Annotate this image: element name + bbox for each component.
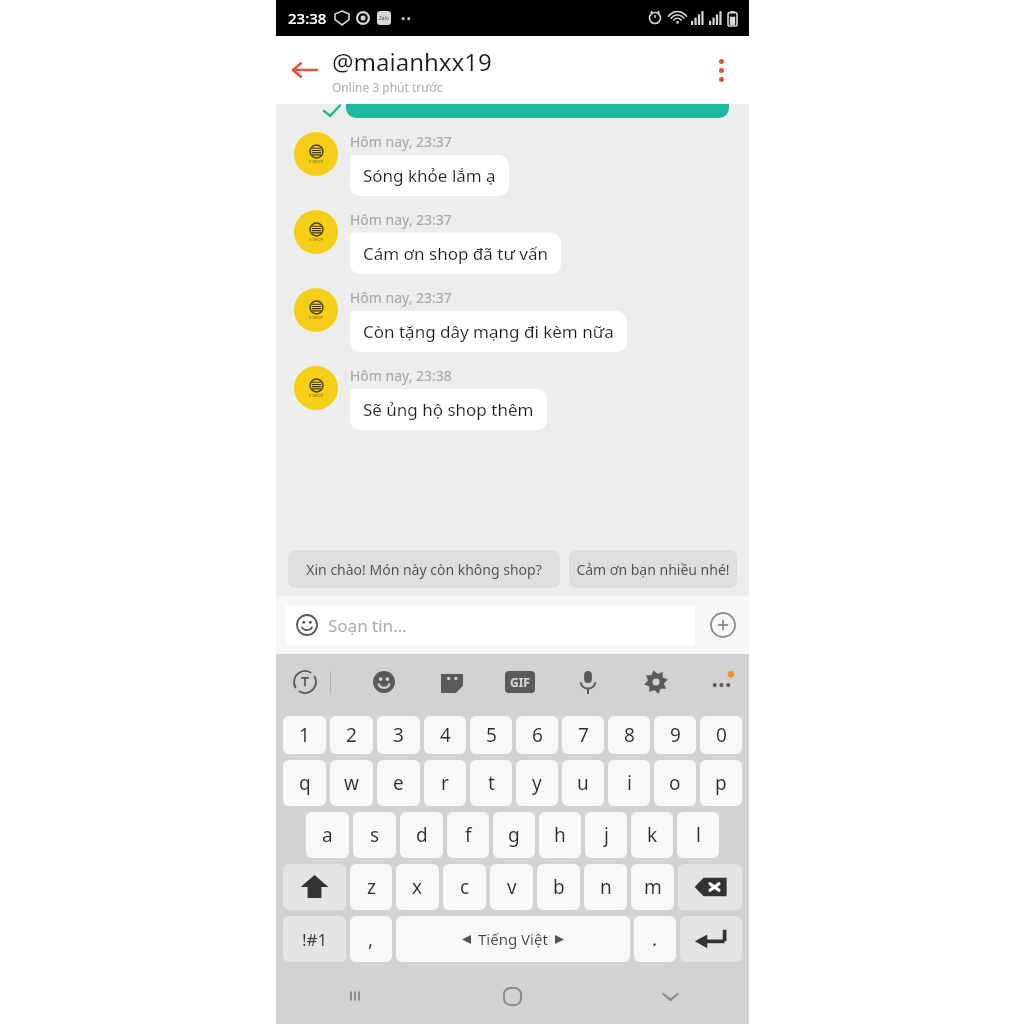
- button[interactable]: Add attachment: [707, 609, 739, 641]
- button[interactable]: Cảm ơn bạn nhiều nhé!: [569, 550, 737, 588]
- button[interactable]: x: [396, 864, 439, 910]
- staticText: 4: [440, 722, 451, 748]
- button[interactable]: Home: [433, 968, 591, 1024]
- button[interactable]: n: [584, 864, 627, 910]
- staticText: X SHOP: [309, 159, 324, 164]
- button[interactable]: v: [490, 864, 533, 910]
- staticText: Hôm nay, 23:37: [350, 132, 452, 151]
- button[interactable]: a: [306, 812, 349, 858]
- button[interactable]: l: [677, 812, 719, 858]
- button[interactable]: s: [353, 812, 396, 858]
- button[interactable]: Settings: [641, 667, 671, 697]
- staticText: z: [367, 874, 376, 900]
- button[interactable]: j: [585, 812, 627, 858]
- staticText: p: [715, 770, 727, 796]
- staticText: 5: [486, 722, 497, 748]
- button[interactable]: t: [470, 760, 512, 806]
- button[interactable]: w: [330, 760, 373, 806]
- button[interactable]: Voice input: [573, 667, 603, 697]
- button[interactable]: Recents: [276, 968, 433, 1024]
- staticText: r: [441, 770, 449, 796]
- staticText: 6: [532, 722, 543, 748]
- button[interactable]: Avatar: [294, 288, 338, 332]
- button[interactable]: Enter: [680, 916, 742, 962]
- staticText: Sóng khỏe lắm ạ: [363, 164, 496, 187]
- button[interactable]: Xin chào! Món này còn không shop?: [288, 550, 560, 588]
- button[interactable]: y: [516, 760, 558, 806]
- button[interactable]: GIF: [505, 671, 535, 693]
- staticText: c: [460, 874, 470, 900]
- staticText: 7: [578, 722, 589, 748]
- button[interactable]: o: [654, 760, 696, 806]
- button[interactable]: 2: [330, 716, 373, 754]
- button[interactable]: e: [377, 760, 420, 806]
- staticText: o: [669, 770, 681, 796]
- staticText: Hôm nay, 23:38: [350, 366, 452, 385]
- staticText: Hôm nay, 23:37: [350, 288, 452, 307]
- staticText: l: [696, 822, 701, 848]
- button[interactable]: Back: [276, 42, 332, 98]
- button[interactable]: Còn tặng dây mạng đi kèm nữa: [350, 311, 627, 352]
- button[interactable]: Sẽ ủng hộ shop thêm: [350, 389, 547, 430]
- button[interactable]: g: [493, 812, 535, 858]
- staticText: j: [604, 822, 609, 848]
- staticText: Soạn tin...: [328, 614, 407, 637]
- staticText: Online 3 phút trước: [332, 79, 443, 95]
- button[interactable]: Avatar: [294, 132, 338, 176]
- button[interactable]: 4: [424, 716, 466, 754]
- button[interactable]: Tiếng Việt: [396, 916, 630, 962]
- button[interactable]: q: [283, 760, 326, 806]
- button[interactable]: Shift: [283, 864, 346, 910]
- staticText: e: [393, 770, 404, 796]
- button[interactable]: z: [350, 864, 392, 910]
- staticText: 9: [670, 722, 681, 748]
- button[interactable]: 5: [470, 716, 512, 754]
- button[interactable]: i: [608, 760, 650, 806]
- button[interactable]: c: [443, 864, 486, 910]
- button[interactable]: Backspace: [678, 864, 742, 910]
- staticText: x: [412, 874, 423, 900]
- button[interactable]: ,: [350, 916, 392, 962]
- button[interactable]: More: [709, 669, 735, 695]
- button[interactable]: b: [537, 864, 580, 910]
- button[interactable]: m: [631, 864, 674, 910]
- button[interactable]: f: [447, 812, 489, 858]
- button[interactable]: Stickers: [437, 667, 467, 697]
- button[interactable]: h: [539, 812, 581, 858]
- button[interactable]: Cám ơn shop đã tư vấn: [350, 233, 561, 274]
- staticText: 2: [346, 722, 357, 748]
- button[interactable]: 9: [654, 716, 696, 754]
- button[interactable]: [346, 104, 729, 118]
- button[interactable]: Avatar: [294, 210, 338, 254]
- button[interactable]: Emoji: [369, 667, 399, 697]
- button[interactable]: 6: [516, 716, 558, 754]
- button[interactable]: Soạn tin...: [286, 605, 695, 645]
- staticText: n: [600, 874, 612, 900]
- button[interactable]: k: [631, 812, 673, 858]
- staticText: GIF: [510, 674, 530, 690]
- button[interactable]: Avatar: [294, 366, 338, 410]
- button[interactable]: u: [562, 760, 604, 806]
- button[interactable]: Sóng khỏe lắm ạ: [350, 155, 509, 196]
- button[interactable]: Hide keyboard: [591, 968, 749, 1024]
- button[interactable]: 0: [700, 716, 742, 754]
- button[interactable]: !#1: [283, 916, 346, 962]
- staticText: .: [652, 926, 658, 952]
- staticText: 8: [624, 722, 635, 748]
- button[interactable]: Translate: [290, 667, 320, 697]
- staticText: X SHOP: [309, 393, 324, 398]
- button[interactable]: 8: [608, 716, 650, 754]
- button[interactable]: .: [634, 916, 676, 962]
- staticText: !#1: [302, 928, 328, 951]
- staticText: i: [627, 770, 632, 796]
- button[interactable]: 3: [377, 716, 420, 754]
- button[interactable]: More options: [693, 42, 749, 98]
- staticText: X SHOP: [309, 237, 324, 242]
- staticText: @maianhxx19: [332, 45, 492, 78]
- button[interactable]: d: [400, 812, 443, 858]
- staticText: Còn tặng dây mạng đi kèm nữa: [363, 320, 614, 343]
- button[interactable]: 7: [562, 716, 604, 754]
- button[interactable]: r: [424, 760, 466, 806]
- button[interactable]: 1: [283, 716, 326, 754]
- button[interactable]: p: [700, 760, 742, 806]
